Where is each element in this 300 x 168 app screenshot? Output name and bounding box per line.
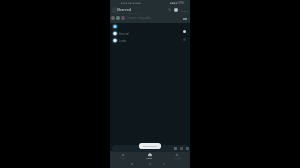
button[interactable]: Leads	[111, 37, 190, 44]
button[interactable]: Mic	[183, 30, 186, 33]
staticText: Leads	[119, 39, 127, 43]
button[interactable]: Reconnecting	[139, 143, 161, 149]
staticText: Leave	[181, 9, 188, 12]
button[interactable]: Leave	[181, 9, 188, 12]
staticText: ▪▪▪▪ 99%	[170, 1, 184, 5]
button[interactable]	[112, 145, 189, 152]
button[interactable]: General	[111, 30, 190, 37]
button[interactable]	[111, 23, 190, 30]
button[interactable]: Add participant	[168, 8, 171, 11]
button[interactable]: Voice message	[186, 147, 189, 150]
staticText: Sharrod	[117, 7, 131, 12]
staticText: 3 tracks · this public	[127, 16, 151, 20]
staticText: you and 2 others in call	[117, 12, 141, 15]
staticText: Reconnecting	[143, 145, 158, 148]
button[interactable]: Media	[136, 151, 163, 161]
staticText: Media	[146, 157, 153, 160]
staticText: General	[119, 32, 129, 36]
button[interactable]: Camera	[180, 147, 183, 150]
button[interactable]: Attach	[174, 147, 177, 150]
button[interactable]: Video call	[174, 8, 178, 12]
staticText: Chats	[120, 157, 126, 160]
button[interactable]: Chats	[110, 151, 136, 161]
staticText: Settings	[173, 157, 181, 160]
button[interactable]: Settings	[163, 151, 190, 161]
staticText: ▪ ▪▪ ▪▪ ▪ ▪▪▪	[121, 1, 141, 5]
button[interactable]: Camera	[183, 38, 186, 41]
